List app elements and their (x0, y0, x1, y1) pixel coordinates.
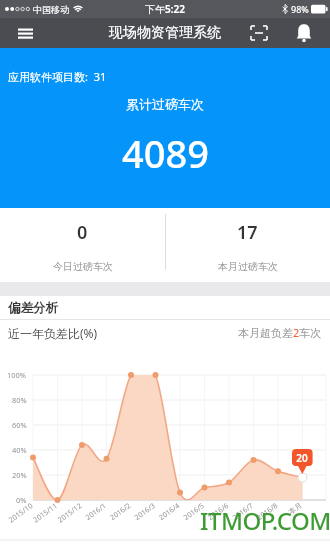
button[interactable] (288, 18, 320, 48)
staticText: 0 (77, 220, 88, 245)
staticText: 应用软件项目数: 31 (8, 69, 107, 84)
staticText: 累计过磅车次 (126, 96, 204, 112)
staticText: ITMOP.COM (200, 504, 330, 537)
button[interactable]: 17 (165, 208, 330, 282)
staticText: 今日过磅车次 (53, 260, 113, 273)
staticText: 4089 (122, 127, 209, 179)
staticText: 偏差分析 (8, 300, 58, 316)
staticText: 下午5:22 (145, 2, 185, 16)
staticText: 现场物资管理系统 (109, 24, 221, 42)
button[interactable] (0, 18, 50, 48)
button[interactable]: 偏差分析 (0, 296, 330, 320)
staticText: 本月过磅车次 (218, 260, 278, 273)
button[interactable]: ITMOP.COM (0, 345, 330, 550)
staticText: 中国移动 (33, 4, 69, 15)
staticText: 98% (291, 3, 309, 15)
staticText: 本月超负差2车次 (238, 325, 322, 340)
button[interactable] (244, 18, 276, 48)
staticText: 近一年负差比(%) (8, 325, 98, 341)
staticText: 17 (237, 220, 258, 245)
button[interactable]: 0 (0, 208, 165, 282)
